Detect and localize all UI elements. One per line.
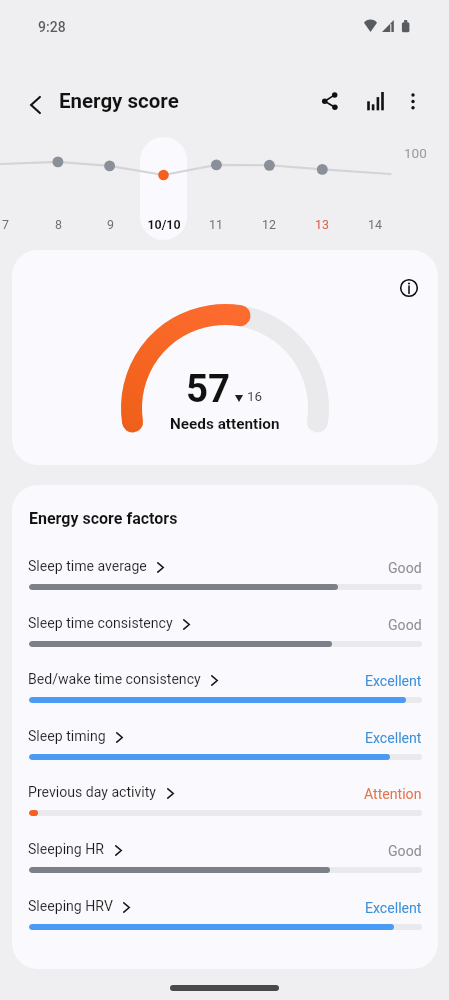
staticText: 10/10 [147,217,181,232]
staticText: 12 [262,217,276,232]
staticText: 16 [247,388,263,404]
button[interactable] [140,137,187,240]
staticText: 9:28 [38,19,66,35]
button[interactable]: More options [391,79,435,123]
staticText: 14 [368,217,382,232]
button[interactable]: Bed/wake time consistency [12,667,438,713]
staticText: Excellent [365,730,422,747]
button[interactable]: Statistics [353,79,397,123]
staticText: Good [388,560,422,577]
staticText: 100 [404,145,427,161]
button[interactable]: Sleep time consistency [12,611,438,657]
staticText: Excellent [365,673,422,690]
button[interactable]: Sleeping HRV [12,894,438,940]
staticText: Good [388,617,422,634]
staticText: 57 [186,366,231,411]
button[interactable]: Sleep timing [12,724,438,770]
staticText: Good [388,843,422,860]
staticText: Sleep time average [28,558,147,575]
staticText: 13 [315,217,329,232]
staticText: Sleeping HRV [28,898,113,915]
staticText: Energy score [59,89,179,113]
staticText: Sleep timing [28,728,106,745]
staticText: 8 [55,217,62,232]
button[interactable]: Sleep time average [12,554,438,600]
button[interactable]: Information [392,271,425,304]
staticText: 11 [209,217,223,232]
button[interactable]: Sleeping HR [12,837,438,883]
staticText: Attention [364,786,422,803]
staticText: Energy score factors [29,509,178,528]
staticText: Bed/wake time consistency [28,671,201,688]
button[interactable]: Share [308,79,352,123]
staticText: Excellent [365,900,422,917]
staticText: Previous day activity [28,784,157,801]
staticText: Needs attention [170,415,280,433]
staticText: Sleeping HR [28,841,105,858]
staticText: 9 [107,217,114,232]
staticText: Sleep time consistency [28,615,173,632]
button[interactable]: Previous day activity [12,780,438,826]
staticText: 7 [2,217,9,232]
button[interactable]: Back [13,83,57,127]
